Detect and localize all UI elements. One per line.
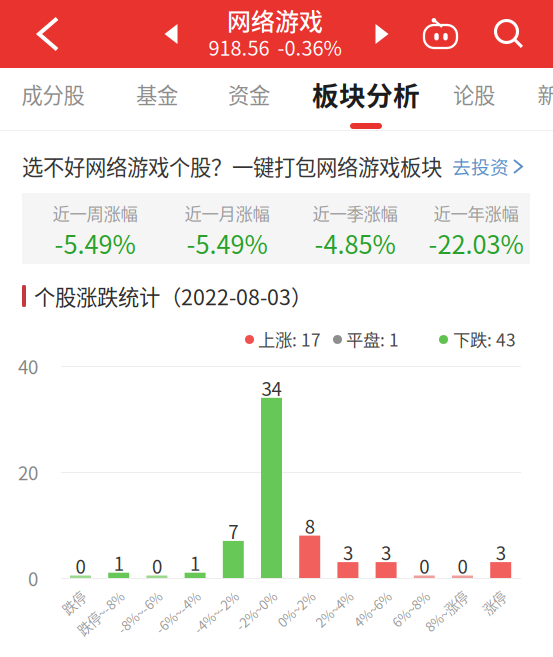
staticText: 34 [261, 374, 281, 401]
staticText: 6%~8% [398, 624, 443, 644]
staticText: -5.49% [186, 225, 267, 261]
button[interactable]: 论股 [438, 68, 510, 130]
staticText: -6%~-4% [158, 624, 213, 644]
staticText: 去投资 [452, 152, 509, 179]
staticText: 基金 [136, 79, 178, 109]
staticText: -4.85% [314, 225, 395, 261]
staticText: 新 [537, 79, 553, 109]
staticText: 7 [228, 517, 238, 544]
staticText: 近一月涨幅 [184, 200, 269, 226]
button[interactable]: 基金 [121, 68, 193, 130]
staticText: 跌停 [73, 624, 99, 644]
staticText: -2%~0% [240, 624, 290, 644]
staticText: 选不好网络游戏个股？一键打包网络游戏板块 [22, 151, 442, 181]
staticText: 0 [75, 552, 85, 579]
staticText: 上涨: 17 [258, 326, 321, 352]
staticText: 3 [381, 539, 391, 566]
staticText: 2%~4% [321, 624, 366, 644]
staticText: -22.03% [428, 225, 523, 261]
staticText: 下跌: 43 [453, 326, 516, 352]
staticText: 4%~6% [359, 624, 404, 644]
staticText: -5.49% [54, 225, 135, 261]
staticText: 20 [18, 458, 38, 485]
staticText: 3 [496, 539, 506, 566]
staticText: 平盘: 1 [346, 326, 399, 352]
staticText: 板块分析 [312, 75, 420, 113]
staticText: 40 [18, 352, 38, 379]
button[interactable]: Previous sector [148, 0, 194, 68]
staticText: 1 [190, 549, 200, 576]
staticText: 918.56 -0.36% [208, 32, 341, 61]
staticText: 跌停~-8% [80, 624, 137, 644]
staticText: -8%~-6% [120, 624, 175, 644]
staticText: 0 [152, 552, 162, 579]
staticText: 1 [114, 549, 124, 576]
staticText: 3 [343, 539, 353, 566]
staticText: 0 [28, 564, 38, 591]
staticText: -4%~-2% [197, 624, 252, 644]
button[interactable]: 成分股 [10, 68, 96, 130]
button[interactable]: 板块分析 [304, 68, 428, 130]
staticText: 网络游戏 [227, 3, 323, 37]
staticText: 近一周涨幅 [52, 200, 137, 226]
staticText: 0 [457, 552, 467, 579]
staticText: 0 [419, 552, 429, 579]
button[interactable]: 选不好网络游戏个股？一键打包网络游戏板块 [0, 151, 553, 181]
button[interactable]: Next sector [359, 0, 405, 68]
button[interactable]: Search [481, 0, 537, 68]
staticText: 8 [305, 512, 315, 539]
button[interactable]: Back [19, 0, 77, 68]
staticText: 资金 [228, 79, 270, 109]
staticText: 近一季涨幅 [312, 200, 397, 226]
staticText: 成分股 [21, 79, 84, 109]
button[interactable]: Assistant [424, 18, 480, 86]
button[interactable]: 资金 [213, 68, 285, 130]
staticText: 0%~2% [283, 624, 328, 644]
staticText: 8%~涨停 [429, 624, 481, 644]
staticText: 近一年涨幅 [433, 200, 518, 226]
staticText: 个股涨跌统计（2022-08-03） [34, 281, 312, 311]
button[interactable]: 新 [531, 68, 553, 130]
staticText: 论股 [453, 79, 495, 109]
